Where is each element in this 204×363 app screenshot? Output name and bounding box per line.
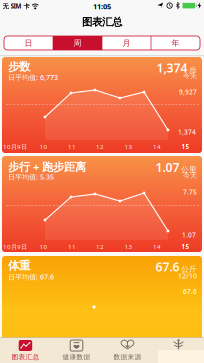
staticText: 10 (39, 142, 47, 151)
button[interactable]: 日 (4, 36, 53, 50)
staticText: 10月9日 (3, 142, 27, 151)
staticText: 10 (39, 242, 47, 251)
staticText: 周 (73, 38, 81, 48)
staticText: 公斤 (181, 264, 197, 274)
button[interactable]: 周 (53, 36, 102, 50)
staticText: 1,374 (156, 59, 187, 76)
staticText: 日 (24, 38, 32, 48)
staticText: 11 (68, 142, 76, 151)
staticText: 图表汇总 (82, 15, 122, 29)
staticText: 15 (181, 142, 189, 151)
staticText: 12/10 (178, 271, 197, 281)
staticText: 健康数据 (62, 353, 90, 361)
staticText: 11:05 (93, 1, 111, 11)
staticText: 数据来源 (113, 353, 141, 361)
staticText: 12 (96, 142, 104, 151)
button[interactable]: 图表汇总 (0, 337, 51, 363)
staticText: 10月9日 (3, 242, 27, 251)
staticText: 67.6 (155, 258, 179, 275)
button[interactable]: 数据来源 (102, 337, 153, 363)
staticText: 12 (96, 242, 104, 251)
staticText: 9,927 (179, 87, 197, 96)
staticText: 年 (171, 38, 179, 48)
staticText: 7.75 (183, 187, 197, 196)
staticText: 13 (124, 242, 132, 251)
button[interactable]: 年 (151, 36, 200, 50)
staticText: 公里 (181, 165, 197, 174)
staticText: 步行 + 跑步距离 (8, 159, 86, 174)
staticText: 步 (189, 65, 197, 75)
staticText: 月 (122, 38, 130, 48)
staticText: 13 (124, 142, 132, 151)
staticText: 今天 (183, 71, 197, 80)
button[interactable]: 月 (102, 36, 151, 50)
staticText: 14 (153, 142, 161, 151)
staticText: 11 (68, 242, 76, 251)
staticText: 1.07 (155, 159, 179, 176)
staticText: 1.07 (182, 230, 196, 239)
staticText: 日平均值: 6,773 (8, 72, 58, 82)
staticText: 今天 (183, 171, 197, 180)
staticText: 15 (181, 242, 189, 251)
staticText: 1,374 (178, 127, 196, 136)
staticText: 无 SIM 卡 (2, 2, 29, 10)
button[interactable]: 医疗急救卡 (153, 337, 204, 363)
staticText: 日平均值: 67.6 (8, 272, 54, 282)
staticText: 67.6 (183, 287, 197, 296)
staticText: 体重 (8, 258, 30, 273)
staticText: 14 (153, 242, 161, 251)
staticText: 步数 (8, 59, 30, 74)
button[interactable]: 健康数据 (51, 337, 102, 363)
staticText: 图表汇总 (11, 353, 39, 361)
staticText: 日平均值: 5.35 (8, 172, 54, 182)
